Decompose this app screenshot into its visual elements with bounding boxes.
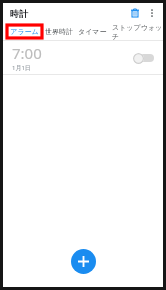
staticText: 世界時計 (45, 27, 73, 36)
button[interactable]: アラーム (7, 27, 42, 36)
staticText: 7:00 (12, 43, 42, 63)
staticText: アラーム (10, 27, 39, 36)
button[interactable]: 削除 (126, 4, 144, 22)
button[interactable]: タイマー (78, 27, 107, 36)
staticText: 1月1日 (12, 64, 31, 72)
button[interactable]: ストップウォッチ (112, 23, 163, 40)
staticText: 時計 (10, 8, 28, 19)
staticText: タイマー (78, 27, 107, 36)
button[interactable]: その他のオプション (144, 5, 160, 21)
button[interactable]: アラームのオン/オフ (133, 51, 155, 65)
button[interactable]: 7:00 (3, 41, 163, 74)
staticText: ストップウォッチ (112, 23, 163, 40)
button[interactable]: 世界時計 (45, 27, 73, 36)
button[interactable]: アラームを追加 (71, 249, 96, 274)
